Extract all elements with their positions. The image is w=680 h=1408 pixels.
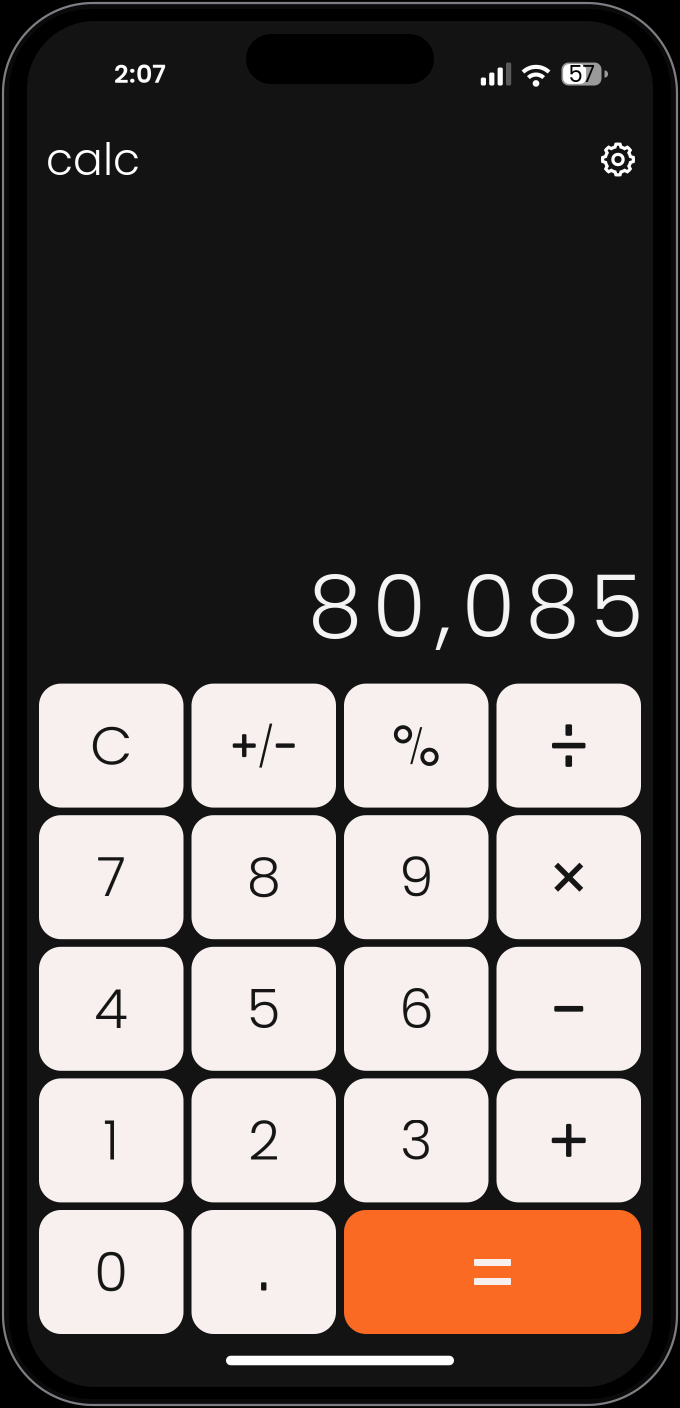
button[interactable] [344, 1210, 641, 1334]
button[interactable]: 6 [344, 947, 488, 1071]
button[interactable]: 2 [191, 1078, 336, 1202]
button[interactable]: 0 [39, 1210, 183, 1334]
button[interactable]: 5 [191, 947, 336, 1071]
staticText: 2:07 [114, 56, 166, 92]
button[interactable]: 8 [191, 815, 336, 939]
staticText: 1 [103, 1102, 119, 1179]
button[interactable]: 1 [39, 1078, 183, 1202]
staticText: 5 [247, 970, 281, 1047]
staticText: 80,085 [308, 546, 643, 667]
button[interactable] [344, 684, 488, 808]
staticText: 6 [399, 970, 433, 1047]
button[interactable]: 9 [344, 815, 488, 939]
button[interactable]: Settings [592, 133, 644, 185]
staticText: 3 [400, 1102, 432, 1179]
staticText: 0 [94, 1234, 128, 1310]
button[interactable] [496, 1078, 641, 1202]
staticText: 57 [568, 58, 594, 90]
staticText: 7 [97, 839, 126, 915]
staticText: C [90, 707, 132, 784]
staticText: calc [46, 129, 140, 190]
staticText: 4 [94, 970, 128, 1047]
button[interactable]: 4 [39, 947, 183, 1071]
button[interactable] [191, 684, 336, 808]
button[interactable] [191, 1210, 336, 1334]
staticText: 2 [248, 1102, 279, 1179]
button[interactable]: 3 [344, 1078, 488, 1202]
button[interactable]: 7 [39, 815, 183, 939]
staticText: 9 [399, 839, 433, 915]
button[interactable] [496, 947, 641, 1071]
staticText: 8 [247, 839, 281, 915]
button[interactable] [496, 684, 641, 808]
button[interactable] [496, 815, 641, 939]
button[interactable]: C [39, 684, 183, 808]
